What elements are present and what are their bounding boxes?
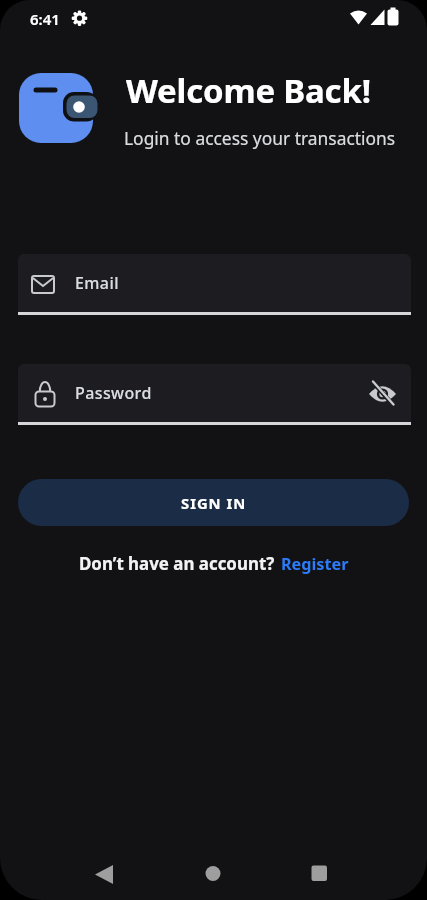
staticText: Don’t have an account? bbox=[79, 552, 275, 575]
staticText: 6:41 bbox=[30, 9, 60, 29]
staticText: Login to access your transactions bbox=[124, 126, 396, 150]
button[interactable] bbox=[18, 364, 411, 425]
button[interactable] bbox=[300, 855, 340, 895]
button[interactable]: Register bbox=[281, 553, 349, 575]
button[interactable] bbox=[85, 855, 125, 895]
staticText: SIGN IN bbox=[181, 493, 247, 513]
button[interactable]: SIGN IN bbox=[18, 479, 409, 526]
staticText: Email bbox=[75, 272, 119, 294]
button[interactable] bbox=[193, 855, 233, 895]
staticText: Welcome Back! bbox=[126, 68, 371, 113]
button[interactable] bbox=[18, 254, 411, 315]
staticText: Password bbox=[75, 382, 152, 404]
